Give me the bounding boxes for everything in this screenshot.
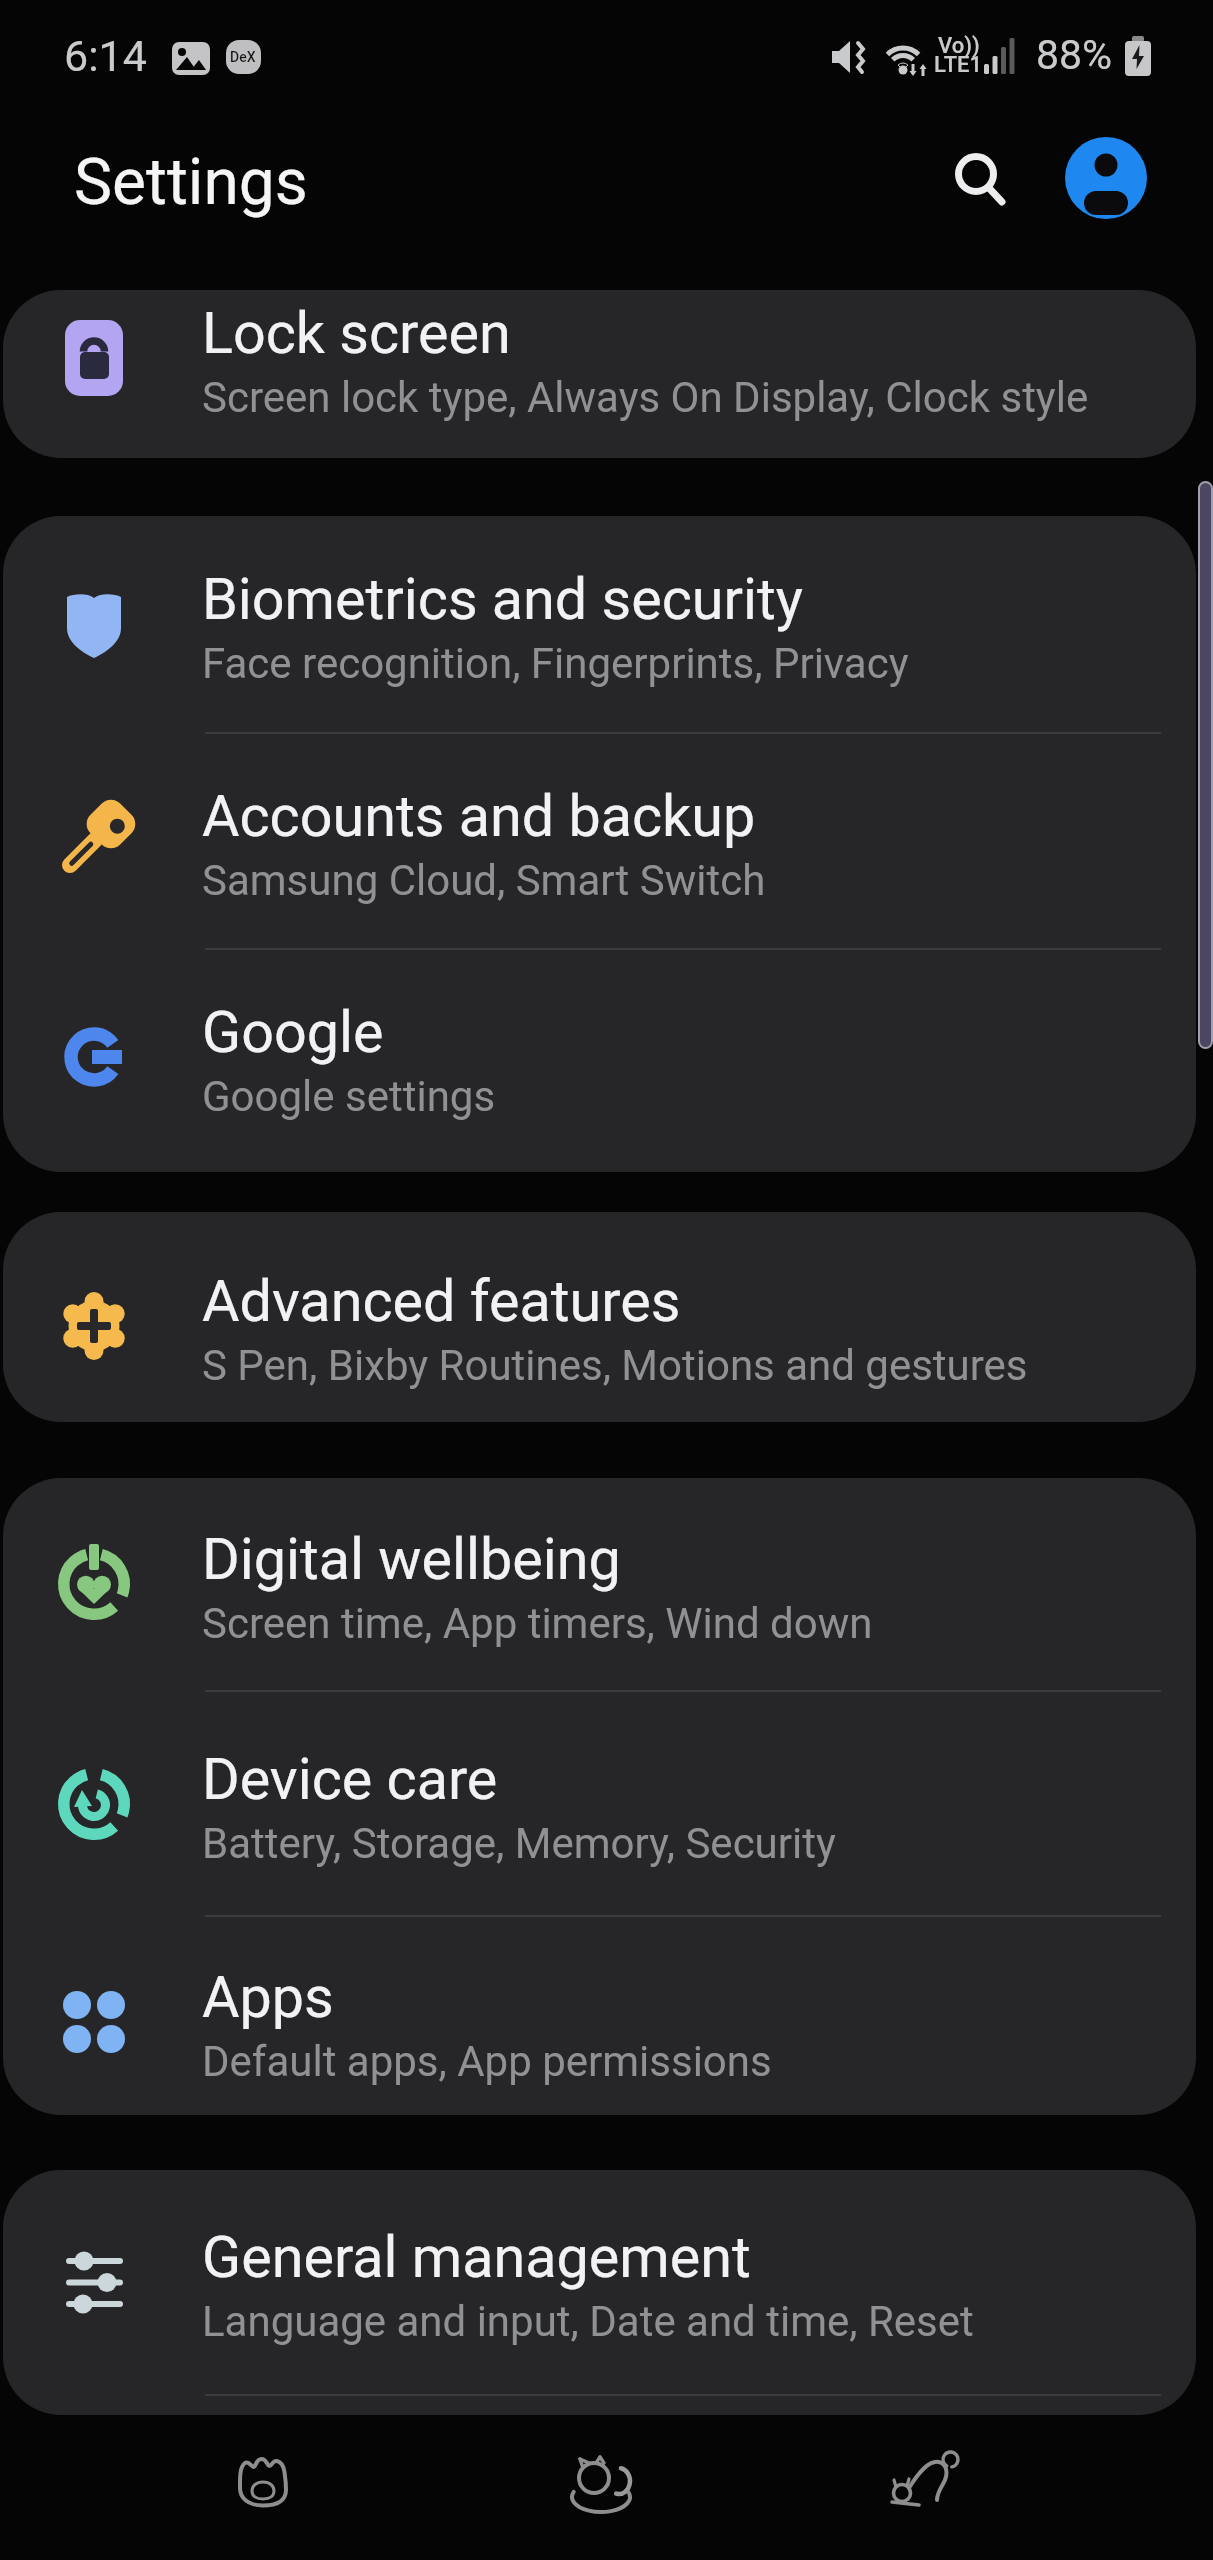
button[interactable]: [3, 1212, 1196, 1422]
staticText: Accounts and backup: [202, 783, 756, 850]
staticText: 88%: [1036, 31, 1113, 79]
staticText: LTE1: [934, 52, 983, 78]
staticText: Google settings: [202, 1072, 496, 1121]
staticText: Screen lock type, Always On Display, Clo…: [202, 373, 1089, 422]
button[interactable]: [234, 2452, 294, 2512]
button[interactable]: [885, 2448, 970, 2533]
staticText: Lock screen: [202, 300, 511, 367]
staticText: Screen time, App timers, Wind down: [202, 1599, 873, 1648]
button[interactable]: [3, 1915, 1196, 2115]
staticText: Samsung Cloud, Smart Switch: [202, 856, 766, 905]
staticText: Default apps, App permissions: [202, 2037, 772, 2086]
staticText: Face recognition, Fingerprints, Privacy: [202, 639, 909, 688]
button[interactable]: [940, 138, 1016, 214]
button[interactable]: [3, 1690, 1196, 1915]
staticText: Settings: [74, 145, 308, 220]
button[interactable]: [3, 1478, 1196, 1690]
staticText: Language and input, Date and time, Reset: [202, 2297, 974, 2346]
staticText: General management: [202, 2224, 751, 2291]
button[interactable]: [3, 516, 1196, 732]
button[interactable]: [3, 732, 1196, 948]
staticText: S Pen, Bixby Routines, Motions and gestu…: [202, 1341, 1028, 1390]
staticText: 6:14: [64, 31, 147, 81]
button[interactable]: [3, 290, 1196, 458]
button[interactable]: [3, 2170, 1196, 2395]
staticText: Vo)): [938, 33, 980, 59]
staticText: Apps: [202, 1964, 334, 2031]
staticText: Advanced features: [202, 1268, 681, 1335]
staticText: Google: [202, 999, 384, 1066]
button[interactable]: [3, 948, 1196, 1172]
staticText: Battery, Storage, Memory, Security: [202, 1819, 836, 1868]
button[interactable]: [566, 2454, 638, 2526]
staticText: Device care: [202, 1746, 498, 1813]
staticText: DeX: [230, 49, 256, 65]
staticText: Digital wellbeing: [202, 1526, 621, 1593]
staticText: Biometrics and security: [202, 566, 803, 633]
button[interactable]: [1065, 137, 1147, 219]
